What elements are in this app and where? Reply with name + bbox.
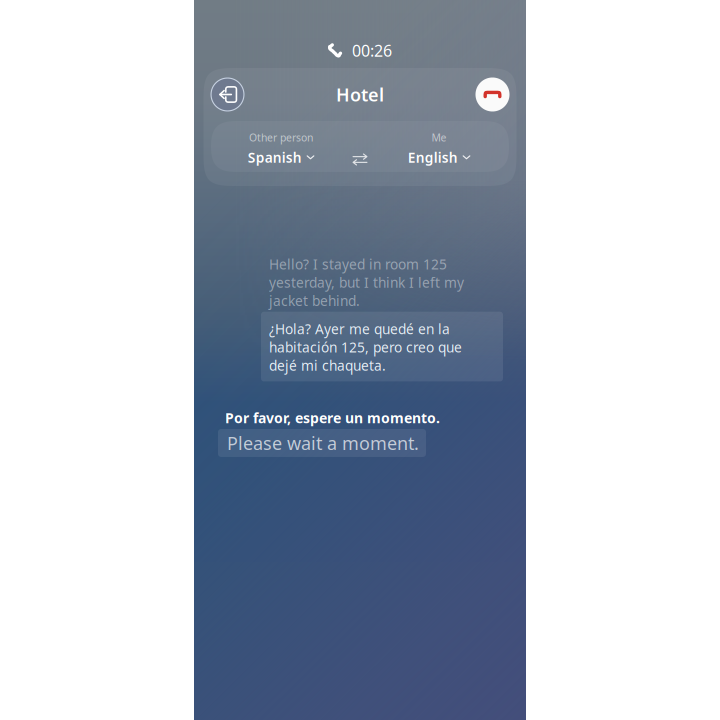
staticText: 00:26 (352, 40, 392, 61)
staticText: English (408, 148, 458, 166)
staticText: Please wait a moment. (227, 431, 419, 455)
staticText: Spanish (248, 148, 302, 166)
staticText: Me (431, 130, 446, 144)
button[interactable]: Leave call (210, 77, 244, 111)
button[interactable]: Me (408, 130, 470, 166)
staticText: ¿Hola? Ayer me quedé en la habitación 12… (269, 320, 462, 374)
staticText: Other person (249, 130, 313, 144)
staticText: Hotel (336, 82, 384, 106)
button[interactable]: End call (475, 77, 509, 111)
staticText: Por favor, espere un momento. (225, 408, 440, 427)
button[interactable]: Other person (248, 130, 314, 166)
staticText: Hello? I stayed in room 125 yesterday, b… (269, 255, 464, 310)
